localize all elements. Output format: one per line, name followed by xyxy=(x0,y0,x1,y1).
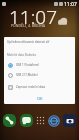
staticText: Mobilní data Sloboda xyxy=(7,53,36,57)
button[interactable]: Browser xyxy=(48,115,60,127)
other: Weather xyxy=(56,16,69,29)
button[interactable]: Camera xyxy=(63,114,76,127)
staticText: OK xyxy=(37,96,43,101)
staticText: SIM 2 (T-Mobile) xyxy=(16,73,38,77)
staticText: Upřednostňovaná datová síť xyxy=(7,40,50,44)
button[interactable]: Zapnout mobilní data xyxy=(4,82,75,92)
staticText: Zapnout mobilní data xyxy=(16,85,46,89)
staticText: 11:07 xyxy=(9,4,58,30)
button[interactable]: Phone xyxy=(3,114,16,127)
button[interactable]: Messages xyxy=(20,114,33,127)
staticText: 11:07 xyxy=(64,1,77,8)
button[interactable]: SIM 2 (T-Mobile) xyxy=(4,70,75,80)
button[interactable]: OK xyxy=(4,92,75,104)
staticText: SIM 1 (Vodafone) xyxy=(16,63,40,67)
button[interactable]: All apps xyxy=(36,116,45,125)
staticText: PONDĚLÍ, 4. BŘEZNA xyxy=(11,23,46,28)
button[interactable]: SIM 1 (Vodafone) xyxy=(4,60,75,70)
